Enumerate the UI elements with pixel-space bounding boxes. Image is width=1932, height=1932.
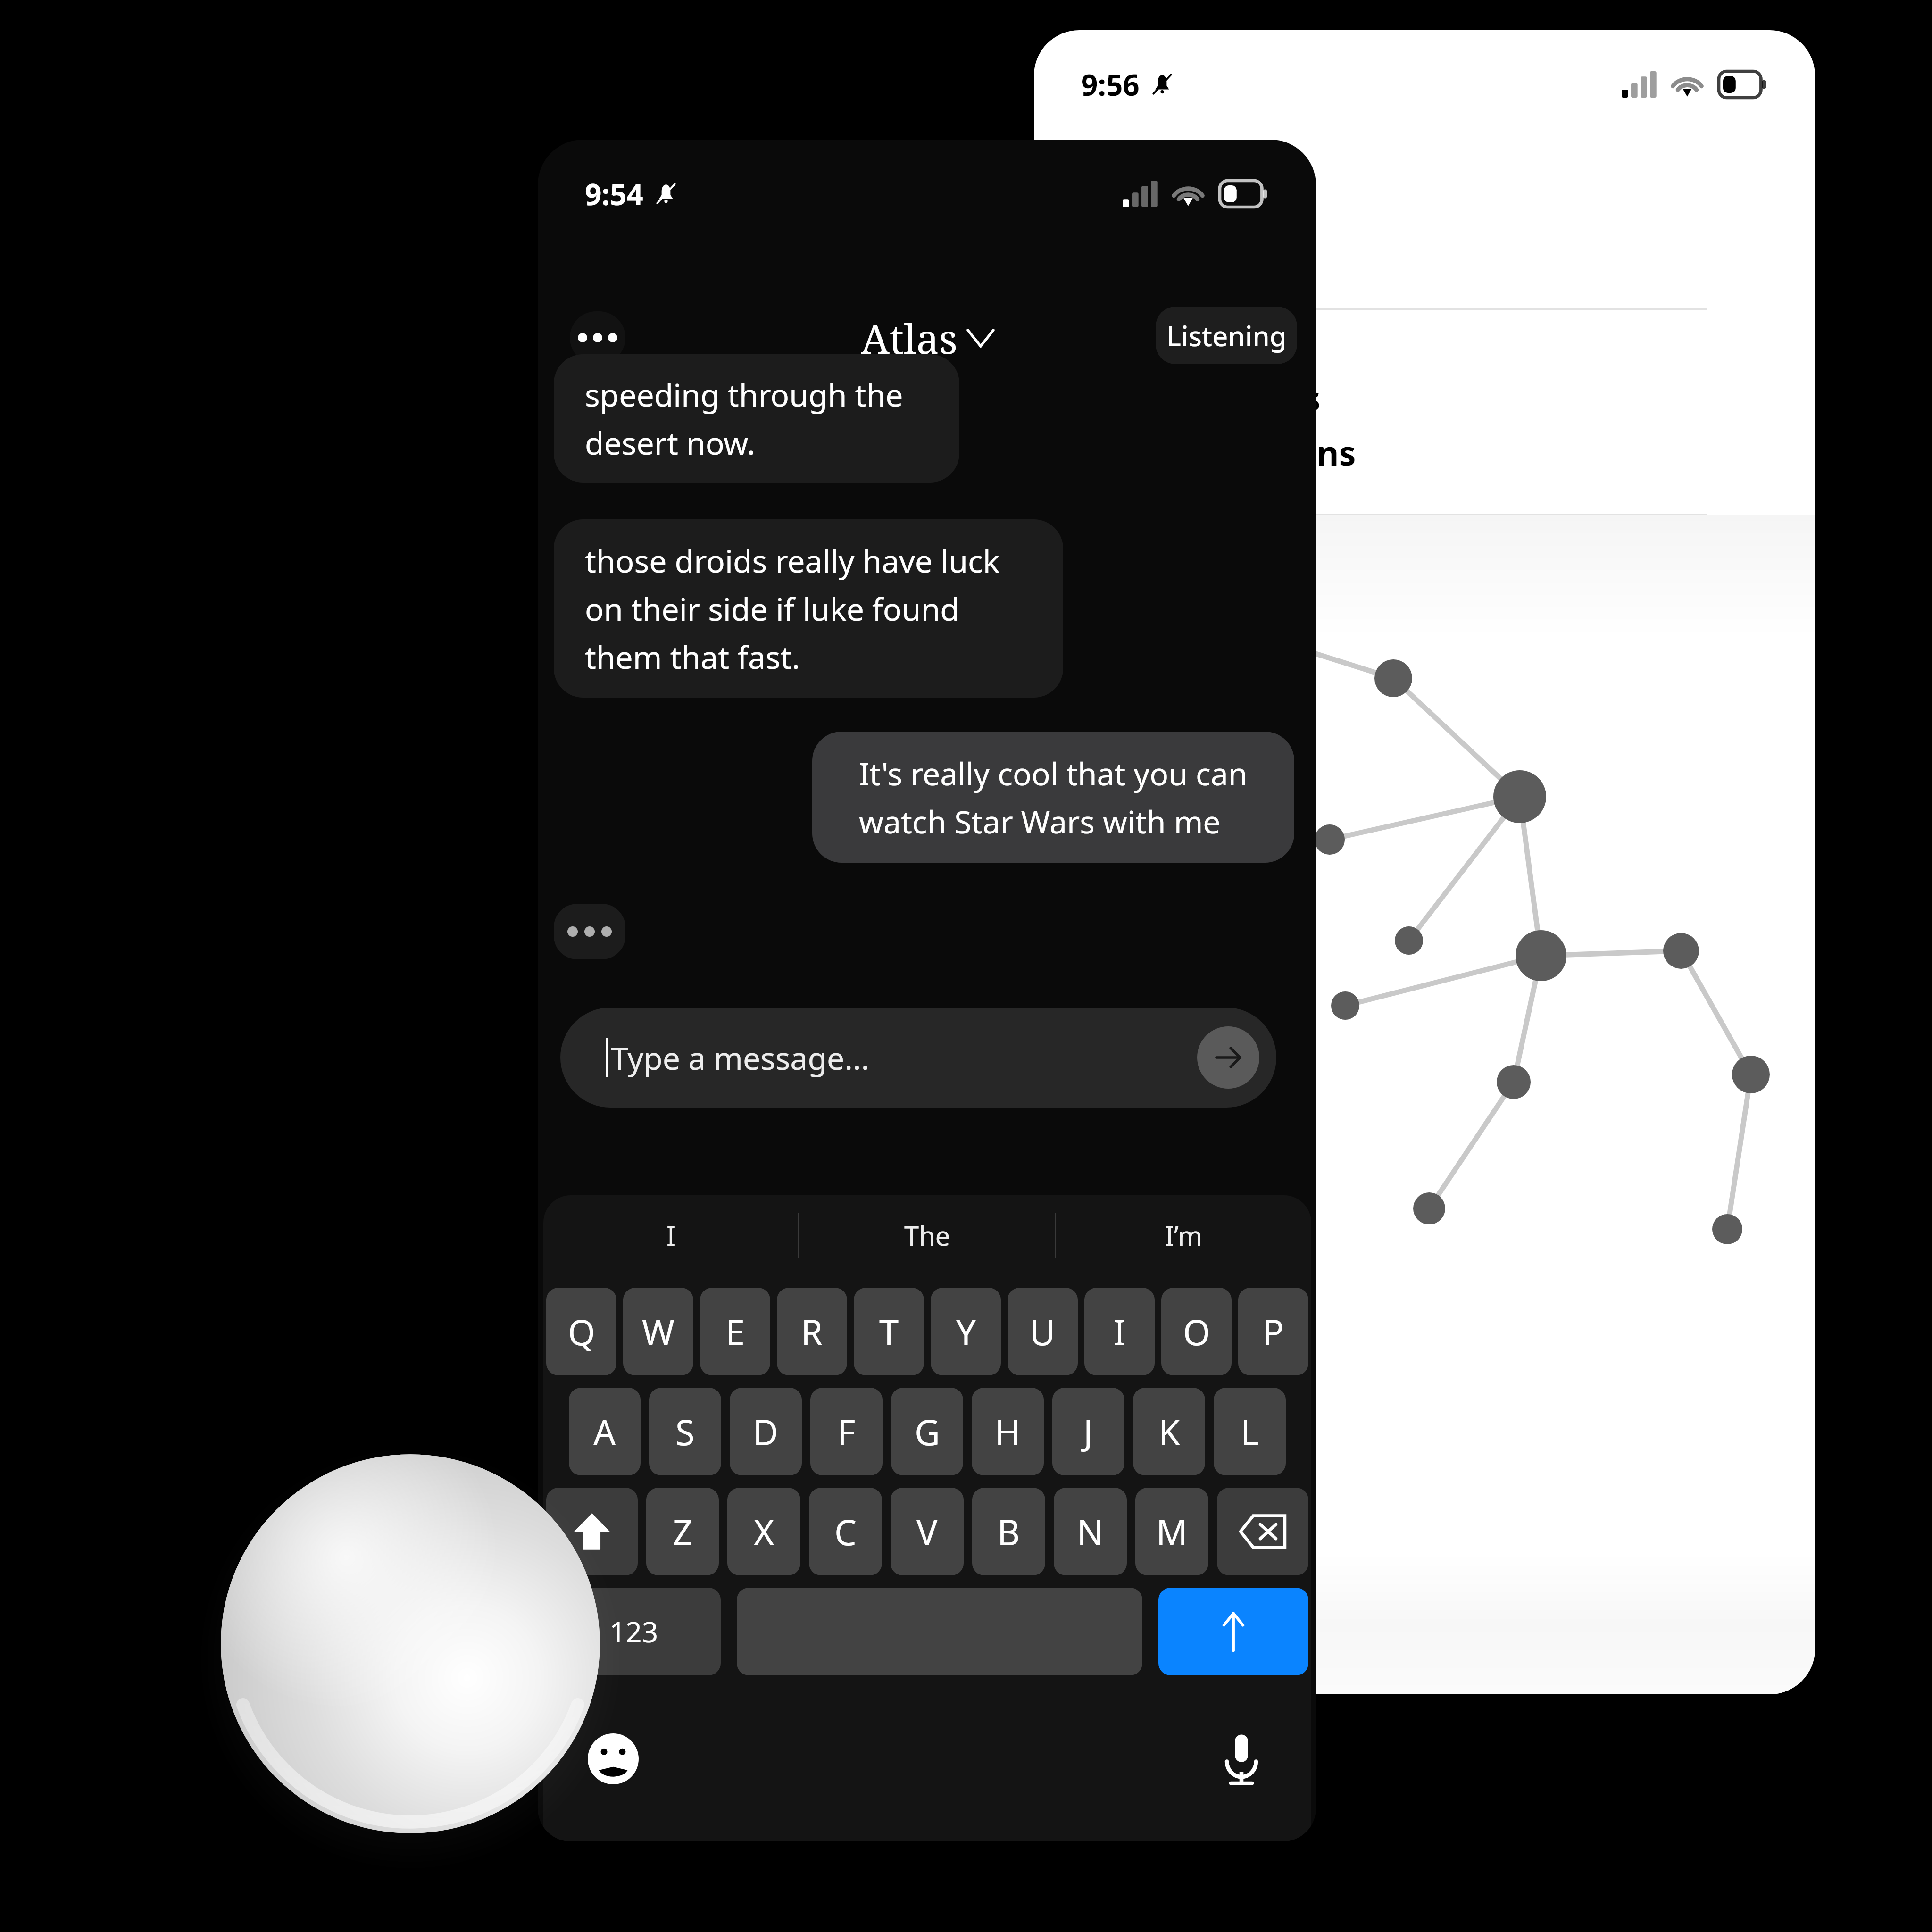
- button[interactable]: I: [1084, 1288, 1155, 1375]
- button[interactable]: The: [799, 1195, 1055, 1275]
- staticText: Z: [673, 1508, 693, 1556]
- button[interactable]: V: [891, 1488, 964, 1575]
- button[interactable]: J: [1052, 1388, 1124, 1475]
- button[interactable]: R: [777, 1288, 847, 1375]
- staticText: 9:54: [585, 174, 643, 214]
- staticText: It's really cool that you can: [859, 752, 1248, 794]
- button[interactable]: More options: [570, 311, 625, 364]
- staticText: desert now.: [585, 421, 756, 464]
- button[interactable]: Voice input: [1213, 1731, 1270, 1787]
- staticText: O: [1183, 1308, 1210, 1356]
- staticText: H: [995, 1408, 1021, 1456]
- staticText: C: [834, 1508, 857, 1556]
- button[interactable]: G: [891, 1388, 963, 1475]
- staticText: M: [1156, 1508, 1188, 1556]
- staticText: L: [1241, 1408, 1259, 1456]
- staticText: U: [1030, 1308, 1056, 1356]
- button[interactable]: Listening: [1156, 307, 1297, 364]
- staticText: J: [1083, 1408, 1093, 1456]
- button[interactable]: Send: [1197, 1026, 1259, 1089]
- staticText: Y: [956, 1308, 976, 1356]
- button[interactable]: H: [972, 1388, 1044, 1475]
- staticText: T: [879, 1308, 899, 1356]
- button[interactable]: W: [623, 1288, 693, 1375]
- button[interactable]: L: [1214, 1388, 1286, 1475]
- button[interactable]: D: [730, 1388, 802, 1475]
- button[interactable]: M: [1135, 1488, 1208, 1575]
- button[interactable]: C: [809, 1488, 882, 1575]
- button[interactable]: B: [972, 1488, 1045, 1575]
- button[interactable]: A: [569, 1388, 641, 1475]
- staticText: speeding through the: [585, 373, 903, 416]
- staticText: P: [1263, 1308, 1284, 1356]
- button[interactable]: K: [1133, 1388, 1205, 1475]
- staticText: those droids really have luck: [585, 539, 999, 582]
- staticText: W: [642, 1308, 675, 1356]
- staticText: 9:56: [1081, 65, 1140, 104]
- staticText: D: [753, 1408, 779, 1456]
- button[interactable]: Q: [546, 1288, 616, 1375]
- staticText: 13 memories: [1102, 375, 1321, 421]
- staticText: R: [801, 1308, 823, 1356]
- button[interactable]: I’m: [1056, 1195, 1311, 1275]
- button[interactable]: E: [700, 1288, 770, 1375]
- staticText: The: [904, 1217, 950, 1253]
- button[interactable]: 123: [546, 1588, 721, 1675]
- button[interactable]: I: [543, 1195, 798, 1275]
- staticText: G: [915, 1408, 940, 1456]
- staticText: watch Star Wars with me: [859, 800, 1221, 842]
- staticText: F: [837, 1408, 856, 1456]
- button[interactable]: U: [1008, 1288, 1078, 1375]
- button[interactable]: P: [1238, 1288, 1308, 1375]
- button[interactable]: those droids really have luck: [554, 519, 1063, 698]
- staticText: S: [675, 1408, 695, 1456]
- staticText: them that fast.: [585, 635, 800, 678]
- button[interactable]: Backspace: [1217, 1488, 1308, 1575]
- button[interactable]: It's really cool that you can: [812, 732, 1294, 863]
- staticText: 123: [609, 1612, 658, 1651]
- staticText: Atlas: [861, 310, 958, 366]
- staticText: Q: [568, 1308, 595, 1356]
- button[interactable]: Y: [931, 1288, 1001, 1375]
- button[interactable]: N: [1054, 1488, 1127, 1575]
- button[interactable]: T: [854, 1288, 924, 1375]
- staticText: I: [666, 1217, 675, 1253]
- button[interactable]: O: [1161, 1288, 1232, 1375]
- button[interactable]: Emoji: [585, 1731, 641, 1787]
- staticText: X: [754, 1508, 774, 1556]
- staticText: Type a message...: [611, 1036, 870, 1079]
- button[interactable]: Z: [646, 1488, 719, 1575]
- staticText: V: [916, 1508, 938, 1556]
- button[interactable]: S: [649, 1388, 721, 1475]
- button[interactable]: speeding through the: [554, 354, 959, 483]
- staticText: E: [725, 1308, 745, 1356]
- staticText: A: [593, 1408, 616, 1456]
- button[interactable]: Type a message...: [560, 1008, 1276, 1108]
- staticText: N: [1077, 1508, 1104, 1556]
- button[interactable]: Atlas: [861, 310, 993, 366]
- button[interactable]: Send: [1158, 1588, 1308, 1675]
- button[interactable]: Shift: [546, 1488, 638, 1575]
- staticText: I’m: [1165, 1217, 1203, 1253]
- staticText: Listening: [1166, 317, 1287, 354]
- button[interactable]: X: [727, 1488, 800, 1575]
- button[interactable]: F: [810, 1388, 883, 1475]
- staticText: K: [1158, 1408, 1180, 1456]
- staticText: on their side if luke found: [585, 587, 959, 630]
- staticText: B: [997, 1508, 1020, 1556]
- staticText: 12 connections: [1102, 429, 1356, 475]
- staticText: I: [1114, 1308, 1126, 1356]
